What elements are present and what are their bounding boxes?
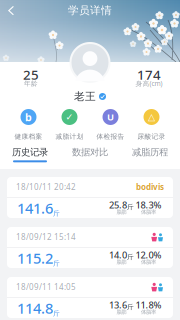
staticText: 历史记录 xyxy=(12,146,48,158)
staticText: 斤 xyxy=(53,209,60,218)
staticText: 身高(cm) xyxy=(135,79,162,88)
staticText: 18.3% xyxy=(135,199,161,211)
staticText: 18/09/11 14:05 xyxy=(16,282,76,292)
staticText: bodivis xyxy=(136,182,164,192)
staticText: 体脂率 xyxy=(141,209,156,215)
staticText: 斤 xyxy=(53,309,60,318)
button[interactable]: 18/09/11 14:05 xyxy=(7,277,173,318)
staticText: 斤 xyxy=(127,203,134,211)
staticText: 174 xyxy=(137,66,161,83)
button[interactable]: U xyxy=(90,109,131,140)
button[interactable]: 数据对比 xyxy=(60,144,120,166)
button[interactable]: ✓ xyxy=(49,109,90,140)
staticText: 尿酸记录 xyxy=(137,132,165,141)
staticText: 11.8% xyxy=(135,299,161,311)
staticText: 12.0% xyxy=(135,249,161,261)
staticText: 14.0 xyxy=(109,249,127,261)
staticText: 脂肪 xyxy=(116,209,126,215)
staticText: 体脂率 xyxy=(141,259,156,265)
staticText: 体脂率 xyxy=(141,309,156,315)
staticText: b xyxy=(25,110,32,124)
button[interactable]: △ xyxy=(131,109,172,140)
staticText: 114.8 xyxy=(17,298,53,318)
staticText: U xyxy=(107,111,114,123)
staticText: 18/10/11 20:42 xyxy=(16,182,76,192)
staticText: △ xyxy=(148,112,155,122)
staticText: ✓ xyxy=(65,112,73,122)
staticText: 斤 xyxy=(53,259,60,268)
button[interactable]: b xyxy=(8,109,49,140)
staticText: 18/09/12 15:14 xyxy=(16,232,76,242)
staticText: 脂肪 xyxy=(116,259,126,265)
button[interactable]: 减脂历程 xyxy=(120,144,180,166)
staticText: 年龄 xyxy=(24,79,38,88)
staticText: 斤 xyxy=(127,303,134,311)
staticText: 115.2 xyxy=(17,248,53,268)
staticText: 25.8 xyxy=(109,199,127,211)
staticText: 老王 xyxy=(74,90,96,103)
staticText: 25 xyxy=(23,66,39,83)
staticText: 数据对比 xyxy=(72,146,108,158)
staticText: 斤 xyxy=(127,253,134,261)
staticText: 健康档案 xyxy=(14,132,42,141)
staticText: 141.6 xyxy=(17,198,53,218)
staticText: 脂肪 xyxy=(116,309,126,315)
button[interactable]: Back xyxy=(2,1,20,20)
staticText: 体检报告 xyxy=(96,132,124,141)
button[interactable]: 历史记录 xyxy=(0,144,60,166)
staticText: 减脂历程 xyxy=(132,146,168,158)
staticText: 减脂计划 xyxy=(55,132,83,141)
staticText: 学员详情 xyxy=(68,4,112,17)
staticText: 13.6 xyxy=(109,299,127,311)
button[interactable]: 18/10/11 20:42 xyxy=(7,177,173,218)
button[interactable]: 18/09/12 15:14 xyxy=(7,227,173,268)
